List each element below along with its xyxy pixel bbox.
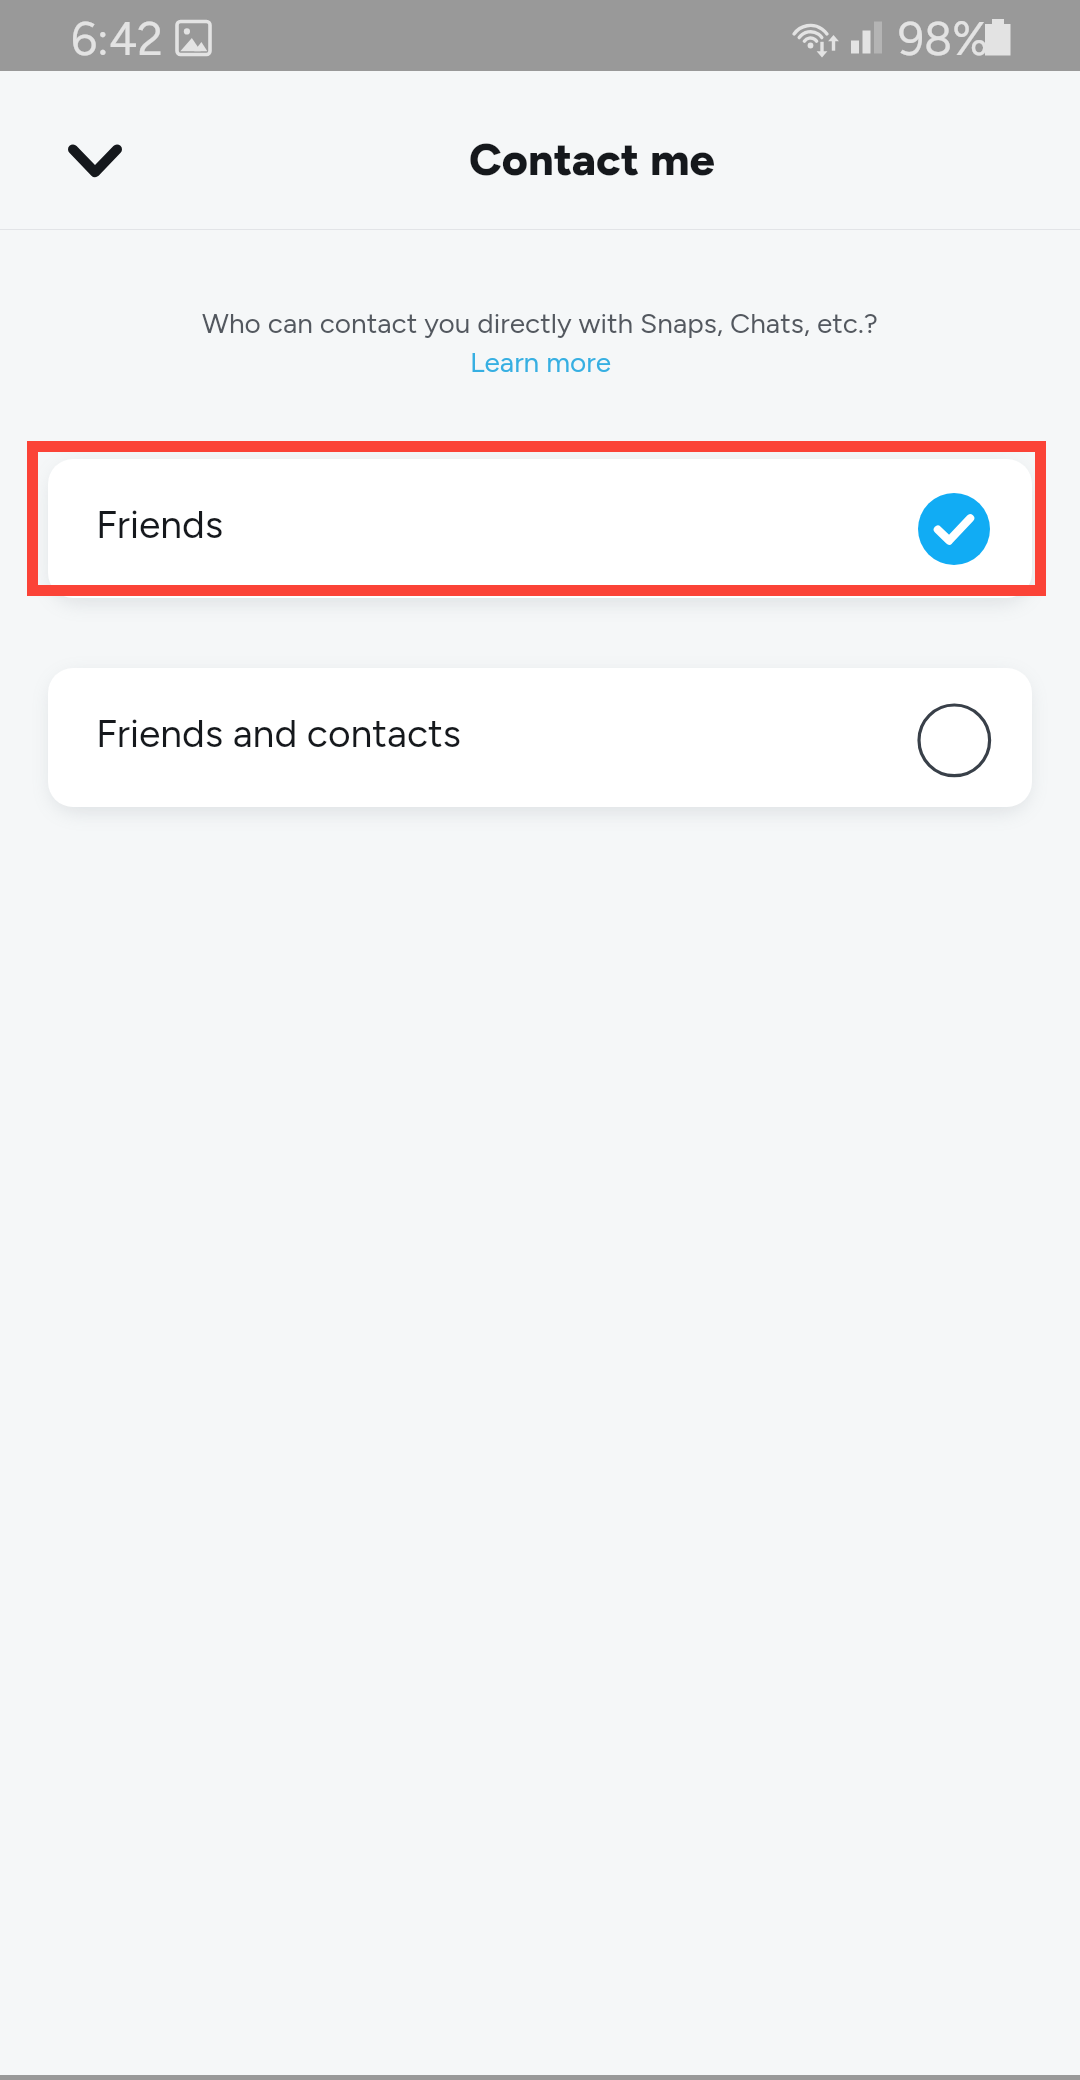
staticText: 98% bbox=[898, 11, 989, 66]
button[interactable]: Friends bbox=[48, 459, 1032, 598]
staticText: 6:42 bbox=[71, 11, 163, 66]
staticText: Contact me bbox=[469, 132, 715, 186]
staticText: Friends bbox=[96, 501, 224, 548]
staticText: Friends and contacts bbox=[96, 710, 461, 757]
button[interactable]: Learn more bbox=[470, 345, 611, 379]
staticText: Who can contact you directly with Snaps,… bbox=[0, 306, 1080, 340]
button[interactable]: Collapse bbox=[51, 129, 139, 189]
button[interactable]: Friends and contacts bbox=[48, 668, 1032, 807]
